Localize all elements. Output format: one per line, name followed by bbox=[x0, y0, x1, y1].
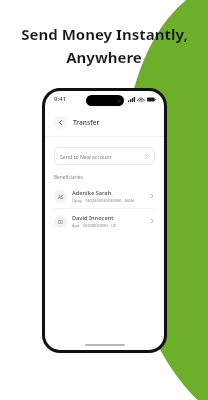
staticText: AS bbox=[58, 194, 64, 200]
staticText: Transfer bbox=[73, 118, 100, 127]
staticText: Apo · 30300030580 · US bbox=[72, 223, 117, 228]
staticText: Adenike Sarah bbox=[72, 189, 112, 197]
staticText: DI bbox=[58, 219, 63, 225]
staticText: Send to New account bbox=[60, 153, 144, 160]
button[interactable]: DI bbox=[45, 211, 164, 231]
button[interactable]: Back bbox=[54, 116, 67, 129]
staticText: Beneficiaries bbox=[54, 174, 83, 181]
staticText: Send Money Instantly, bbox=[21, 24, 188, 44]
staticText: 9:41 bbox=[54, 95, 66, 103]
button[interactable]: Send to New account bbox=[54, 147, 155, 165]
button[interactable]: AS bbox=[45, 186, 164, 206]
staticText: Opay · 1402400030040580 · NGN bbox=[72, 198, 134, 203]
staticText: David Innocent bbox=[72, 214, 114, 222]
staticText: Anywhere bbox=[66, 47, 142, 67]
